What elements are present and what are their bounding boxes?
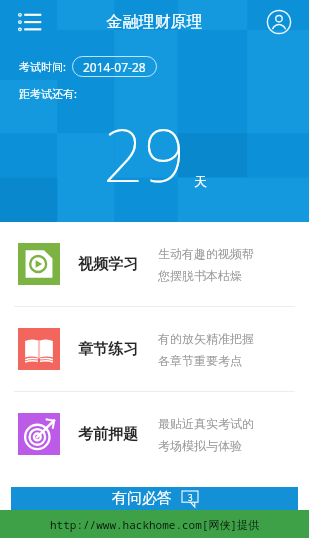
staticText: 距考试还有:	[19, 86, 77, 101]
button[interactable]: Menu	[10, 2, 50, 42]
staticText: 有问必答	[112, 489, 172, 508]
staticText: 视频学习	[78, 255, 138, 274]
staticText: 金融理财原理	[50, 12, 259, 32]
button[interactable]: 2014-07-28	[72, 56, 157, 77]
staticText: 天	[194, 173, 207, 189]
button[interactable]: 考前押题	[0, 392, 309, 476]
staticText: 考场模拟与体验	[158, 438, 242, 453]
staticText: 您摆脱书本枯燥	[158, 268, 242, 283]
staticText: 考前押题	[78, 425, 138, 444]
button[interactable]: Profile	[259, 2, 299, 42]
button[interactable]: 有问必答	[11, 487, 298, 510]
button[interactable]: 章节练习	[0, 307, 309, 391]
staticText: 最贴近真实考试的	[158, 416, 254, 431]
staticText: 2014-07-28	[83, 59, 146, 75]
staticText: 考试时间:	[19, 59, 66, 74]
staticText: 各章节重要考点	[158, 353, 242, 368]
staticText: 章节练习	[78, 340, 138, 359]
staticText: 有的放矢精准把握	[158, 331, 254, 346]
staticText: http://www.hackhome.com[网侠]提供	[50, 517, 259, 532]
button[interactable]: 视频学习	[0, 222, 309, 306]
staticText: 生动有趣的视频帮	[158, 246, 254, 261]
staticText: 3	[188, 492, 193, 503]
staticText: 29	[103, 105, 186, 203]
